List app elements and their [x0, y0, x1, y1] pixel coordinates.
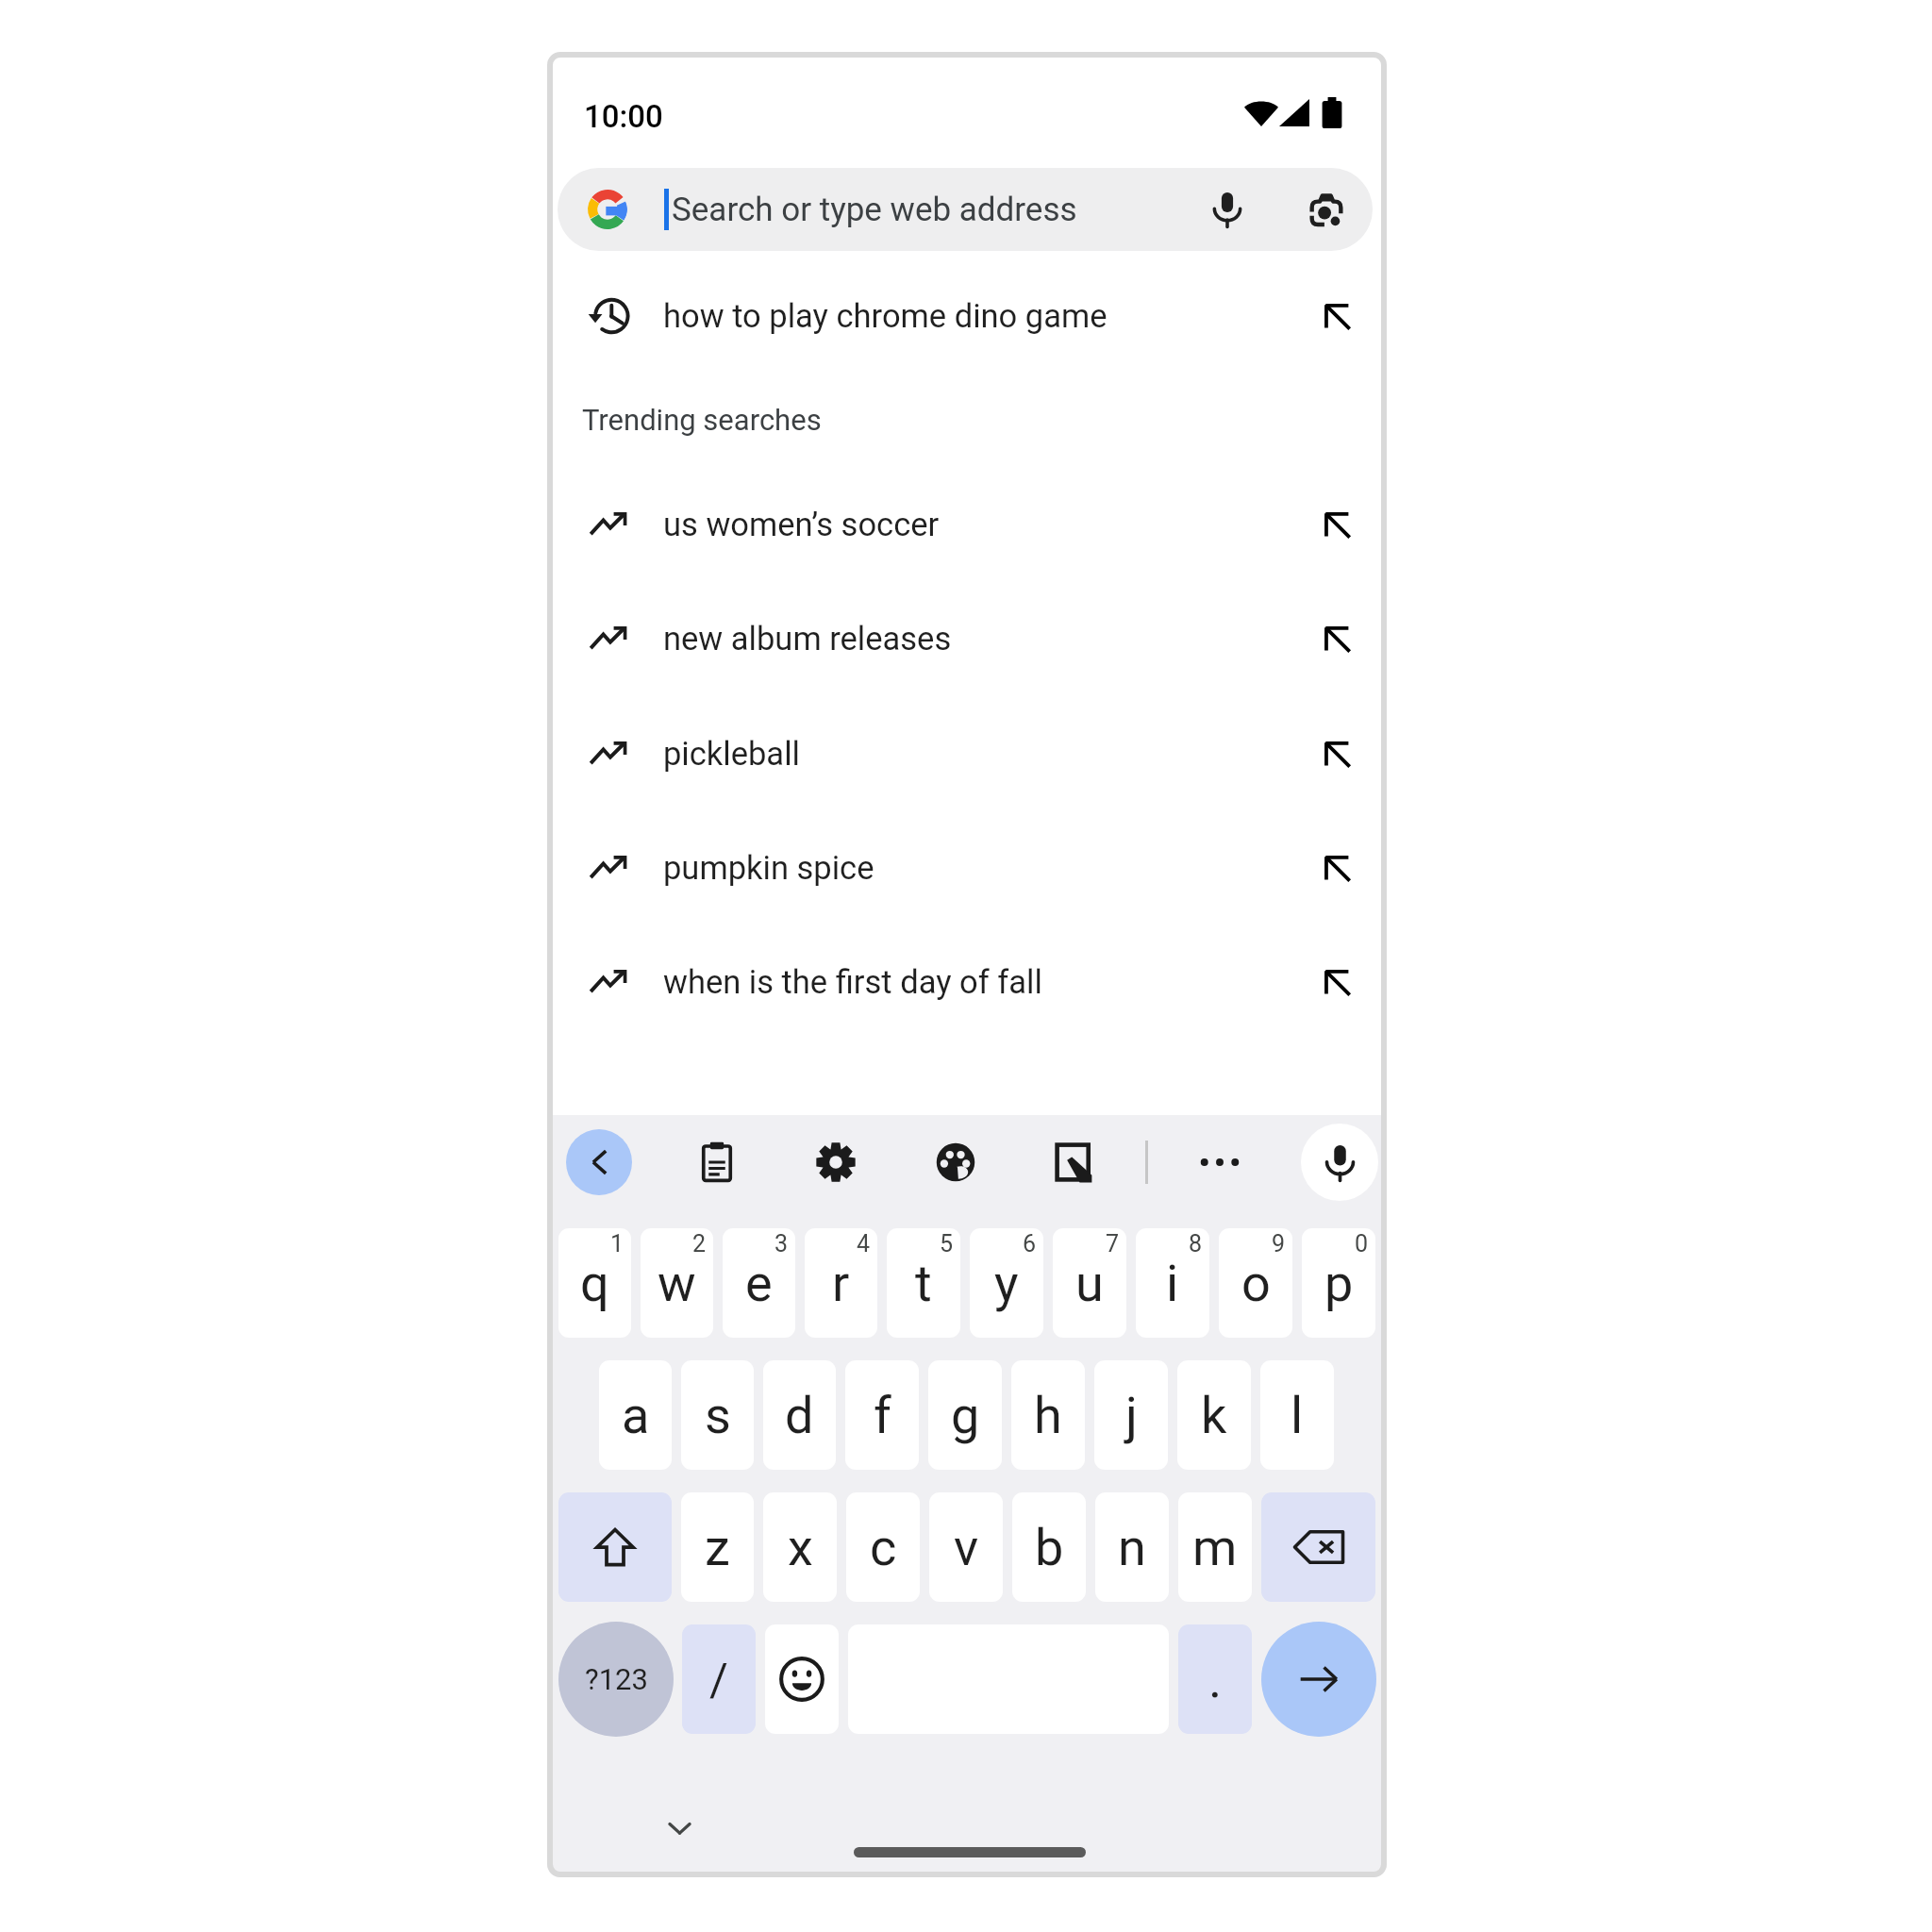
button[interactable]: n [1095, 1492, 1169, 1602]
button[interactable]: u [1053, 1228, 1126, 1338]
button[interactable]: Voice search [1199, 181, 1256, 238]
button[interactable]: Backspace [1261, 1492, 1375, 1602]
button[interactable]: Shift [558, 1492, 672, 1602]
staticText: o [1241, 1254, 1271, 1313]
staticText: pickleball [663, 735, 800, 773]
button[interactable]: Keyboard settings [799, 1125, 873, 1199]
button[interactable]: b [1012, 1492, 1086, 1602]
staticText: p [1324, 1254, 1354, 1313]
button[interactable]: v [929, 1492, 1003, 1602]
button[interactable]: l [1260, 1360, 1334, 1470]
button[interactable]: q [558, 1228, 631, 1338]
staticText: y [994, 1254, 1019, 1313]
button[interactable]: Search with Google Lens [1298, 181, 1355, 238]
button[interactable]: pumpkin spice [547, 813, 1387, 923]
staticText: 4 [857, 1230, 871, 1257]
staticText: v [954, 1518, 979, 1577]
staticText: k [1201, 1386, 1227, 1445]
button[interactable]: Search [1261, 1622, 1376, 1737]
button[interactable]: Refine: how to play chrome dino game [1310, 290, 1363, 342]
staticText: 10:00 [584, 98, 663, 135]
button[interactable]: Refine: pumpkin spice [1310, 841, 1363, 894]
button[interactable]: Search or type web address [558, 168, 1373, 251]
button[interactable]: e [723, 1228, 795, 1338]
staticText: Trending searches [582, 403, 822, 437]
button[interactable]: when is the first day of fall [547, 927, 1387, 1037]
button[interactable]: o [1219, 1228, 1292, 1338]
button[interactable]: Stickers [1038, 1125, 1111, 1199]
staticText: d [785, 1386, 814, 1445]
staticText: g [951, 1386, 980, 1445]
staticText: / [709, 1653, 728, 1706]
staticText: t [915, 1254, 932, 1313]
button[interactable]: Back [566, 1129, 632, 1195]
staticText: ?123 [585, 1662, 648, 1696]
button[interactable]: f [845, 1360, 919, 1470]
staticText: i [1166, 1254, 1179, 1313]
button[interactable]: m [1178, 1492, 1252, 1602]
staticText: pumpkin spice [663, 849, 874, 887]
staticText: u [1075, 1254, 1104, 1313]
button[interactable]: d [763, 1360, 836, 1470]
button[interactable]: Refine: us women’s soccer [1310, 498, 1363, 551]
staticText: 9 [1272, 1230, 1286, 1257]
button[interactable]: / [682, 1624, 756, 1734]
staticText: 1 [610, 1230, 625, 1257]
staticText: e [745, 1254, 773, 1313]
button[interactable]: us women’s soccer [547, 470, 1387, 579]
staticText: z [705, 1518, 730, 1577]
button[interactable]: . [1178, 1624, 1252, 1734]
button[interactable]: More options [1183, 1125, 1257, 1199]
button[interactable]: Clipboard [680, 1125, 754, 1199]
staticText: b [1035, 1518, 1064, 1577]
staticText: new album releases [663, 620, 952, 658]
button[interactable]: Themes [919, 1125, 992, 1199]
button[interactable]: t [887, 1228, 960, 1338]
button[interactable]: Voice typing [1301, 1124, 1378, 1201]
staticText: l [1291, 1386, 1304, 1445]
button[interactable]: Refine: new album releases [1310, 612, 1363, 665]
staticText: f [874, 1386, 891, 1445]
button[interactable]: new album releases [547, 584, 1387, 693]
staticText: a [622, 1386, 650, 1445]
staticText: us women’s soccer [663, 506, 940, 543]
staticText: Search or type web address [672, 191, 1077, 229]
staticText: n [1118, 1518, 1146, 1577]
staticText: 3 [774, 1230, 789, 1257]
button[interactable]: j [1094, 1360, 1168, 1470]
button[interactable]: z [681, 1492, 754, 1602]
button[interactable]: y [970, 1228, 1043, 1338]
button[interactable]: x [763, 1492, 837, 1602]
button[interactable]: pickleball [547, 699, 1387, 808]
button[interactable]: Refine: when is the first day of fall [1310, 956, 1363, 1008]
staticText: how to play chrome dino game [663, 297, 1108, 335]
staticText: 6 [1023, 1230, 1037, 1257]
staticText: r [832, 1254, 850, 1313]
button[interactable]: Refine: pickleball [1310, 727, 1363, 780]
button[interactable]: how to play chrome dino game [547, 261, 1387, 371]
button[interactable]: r [805, 1228, 877, 1338]
staticText: when is the first day of fall [663, 963, 1042, 1001]
button[interactable]: i [1136, 1228, 1209, 1338]
button[interactable]: Hide keyboard [658, 1806, 701, 1849]
staticText: j [1125, 1386, 1138, 1445]
staticText: 8 [1189, 1230, 1203, 1257]
staticText: w [658, 1254, 696, 1313]
button[interactable]: h [1011, 1360, 1085, 1470]
button[interactable]: g [928, 1360, 1002, 1470]
button[interactable]: a [599, 1360, 672, 1470]
button[interactable]: s [681, 1360, 754, 1470]
staticText: 0 [1355, 1230, 1369, 1257]
button[interactable]: ?123 [558, 1622, 674, 1737]
button[interactable]: p [1302, 1228, 1375, 1338]
staticText: q [580, 1254, 609, 1313]
staticText: h [1034, 1386, 1062, 1445]
staticText: x [788, 1518, 813, 1577]
button[interactable]: c [846, 1492, 920, 1602]
staticText: 5 [940, 1230, 954, 1257]
staticText: m [1192, 1518, 1238, 1577]
button[interactable]: k [1177, 1360, 1251, 1470]
button[interactable]: w [641, 1228, 713, 1338]
button[interactable]: Emoji [765, 1624, 839, 1734]
